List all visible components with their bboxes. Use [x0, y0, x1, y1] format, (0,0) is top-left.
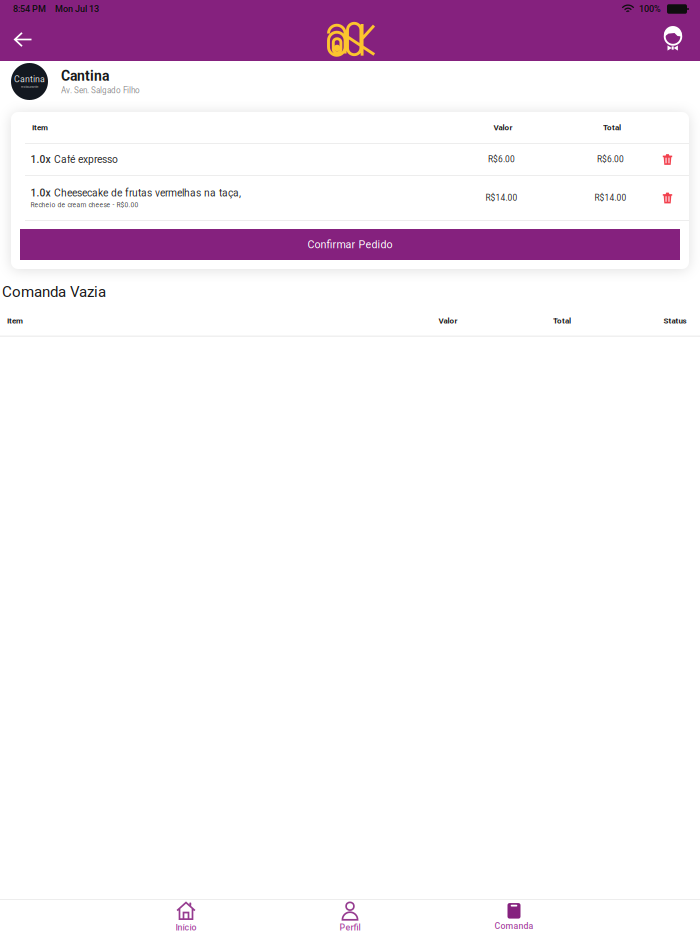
staticText: 1.0x — [30, 153, 50, 165]
staticText: R$14.00 — [485, 193, 517, 203]
staticText: Valor — [438, 316, 457, 325]
staticText: Recheio de cream cheese - R$0.00 — [30, 201, 138, 209]
staticText: Confirmar Pedido — [307, 238, 392, 251]
button[interactable]: Início — [104, 900, 268, 934]
staticText: Café expresso — [54, 153, 118, 165]
button[interactable]: Chamar garçom — [653, 19, 693, 59]
button[interactable]: Voltar — [3, 19, 43, 59]
staticText: 1.0x — [30, 187, 50, 199]
staticText: restaurante — [20, 84, 38, 89]
button[interactable]: Confirmar Pedido — [20, 229, 680, 260]
staticText: Status — [663, 316, 686, 325]
staticText: 8:54 PM — [13, 4, 46, 14]
staticText: Mon Jul 13 — [55, 4, 99, 14]
staticText: Item — [7, 316, 23, 325]
staticText: Item — [32, 123, 48, 132]
staticText: Total — [553, 316, 571, 325]
staticText: Av. Sen. Salgado Filho — [61, 86, 140, 95]
staticText: 100% — [639, 4, 661, 14]
button[interactable]: Remover item — [652, 186, 682, 210]
staticText: Cantina — [61, 68, 109, 84]
staticText: R$14.00 — [594, 193, 626, 203]
staticText: Cantina — [14, 74, 45, 84]
staticText: Início — [175, 922, 196, 933]
staticText: R$6.00 — [597, 155, 624, 164]
staticText: Total — [603, 123, 621, 132]
button[interactable]: Perfil — [268, 900, 432, 934]
button[interactable]: Remover item — [652, 147, 682, 171]
staticText: Valor — [493, 123, 512, 132]
staticText: Comanda — [494, 921, 533, 931]
staticText: Perfil — [339, 922, 360, 933]
staticText: Cheesecake de frutas vermelhas na taça, — [54, 187, 241, 199]
button[interactable]: Comanda — [432, 900, 596, 934]
staticText: Comanda Vazia — [2, 283, 106, 301]
staticText: R$6.00 — [488, 155, 515, 164]
